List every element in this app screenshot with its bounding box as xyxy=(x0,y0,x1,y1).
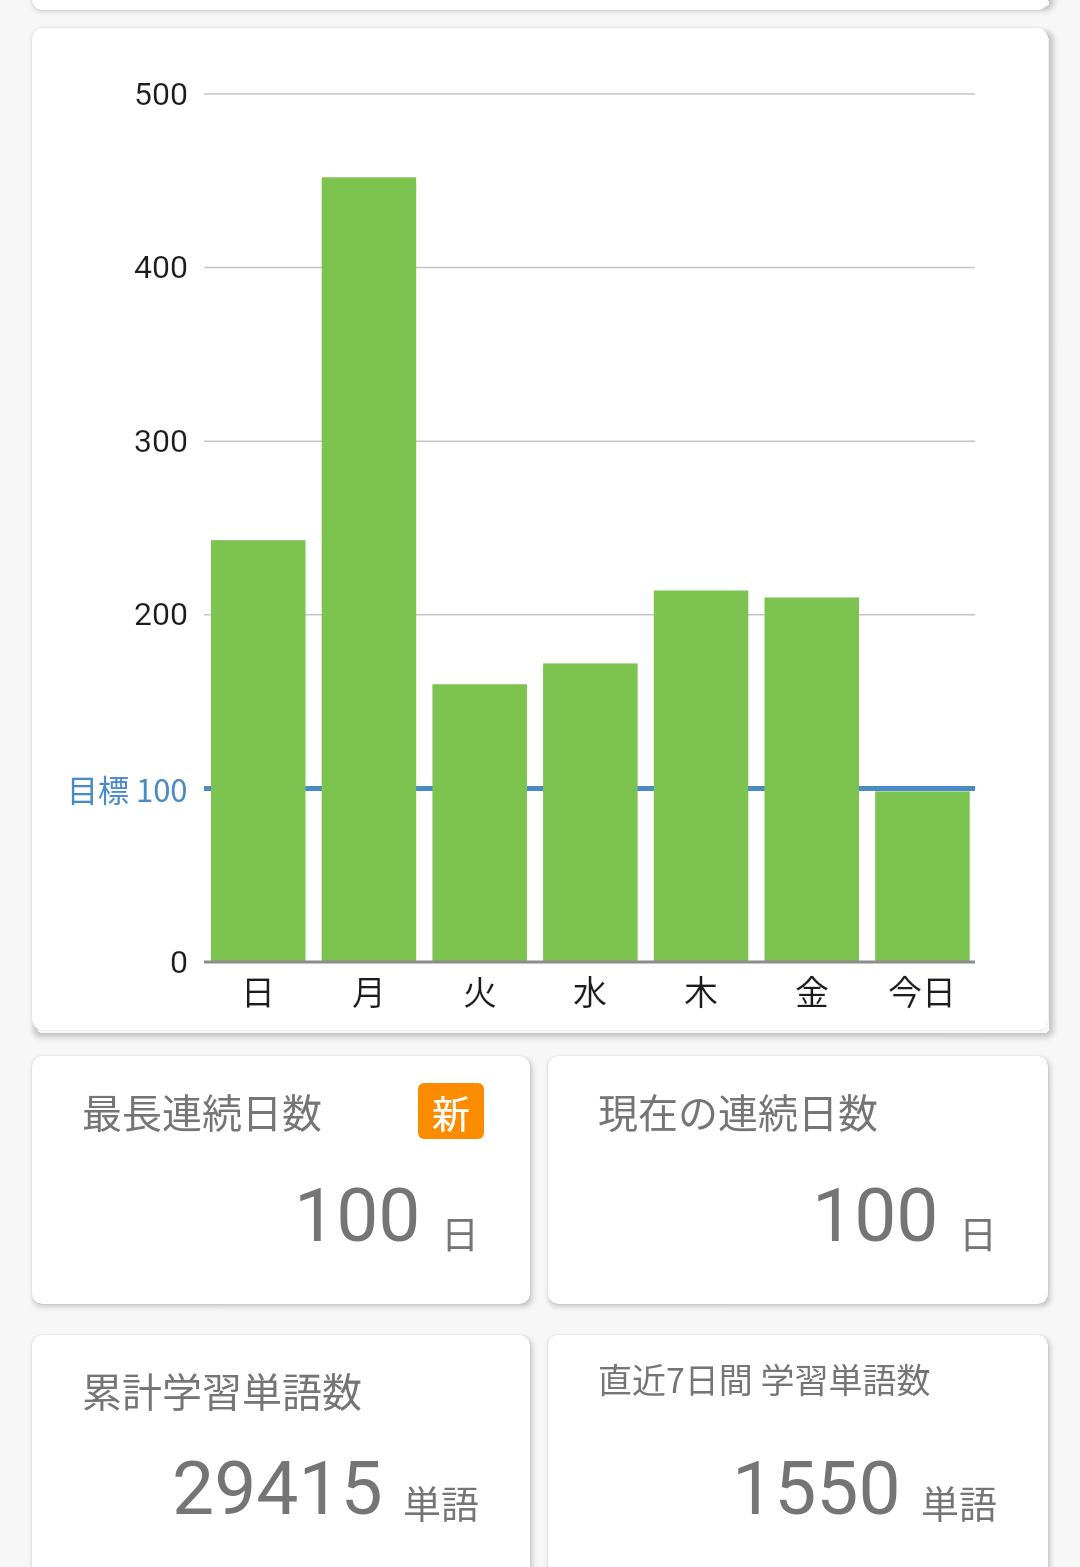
staticText: 100 xyxy=(812,1171,939,1259)
staticText: 29415 xyxy=(172,1444,383,1532)
staticText: 火 xyxy=(463,966,497,1014)
staticText: 最長連続日数 xyxy=(82,1082,322,1138)
staticText: 日 xyxy=(959,1204,998,1259)
staticText: 現在の連続日数 xyxy=(598,1082,878,1138)
button[interactable]: 直近7日間 学習単語数 xyxy=(548,1335,1048,1567)
staticText: 累計学習単語数 xyxy=(82,1361,362,1417)
staticText: 100 xyxy=(294,1171,421,1259)
staticText: 日 xyxy=(241,966,275,1014)
staticText: 目標 100 xyxy=(67,766,188,811)
staticText: 今日 xyxy=(888,966,956,1014)
staticText: 単語 xyxy=(921,1474,998,1529)
staticText: 400 xyxy=(134,248,188,286)
button[interactable]: 最長連続日数 xyxy=(32,1056,530,1304)
staticText: 500 xyxy=(134,75,188,113)
staticText: 日 xyxy=(441,1204,480,1259)
staticText: 水 xyxy=(573,966,607,1014)
staticText: 新 xyxy=(432,1084,471,1139)
button[interactable]: 現在の連続日数 xyxy=(548,1056,1048,1304)
staticText: 金 xyxy=(795,966,829,1014)
staticText: 1550 xyxy=(732,1444,901,1532)
staticText: 月 xyxy=(352,966,386,1014)
staticText: 200 xyxy=(134,595,188,633)
staticText: 単語 xyxy=(403,1474,480,1529)
button[interactable]: 500 xyxy=(32,28,1048,1030)
button[interactable]: 累計学習単語数 xyxy=(32,1335,530,1567)
staticText: 木 xyxy=(684,966,718,1014)
staticText: 直近7日間 学習単語数 xyxy=(598,1354,931,1403)
staticText: 0 xyxy=(170,943,188,981)
staticText: 300 xyxy=(134,422,188,460)
